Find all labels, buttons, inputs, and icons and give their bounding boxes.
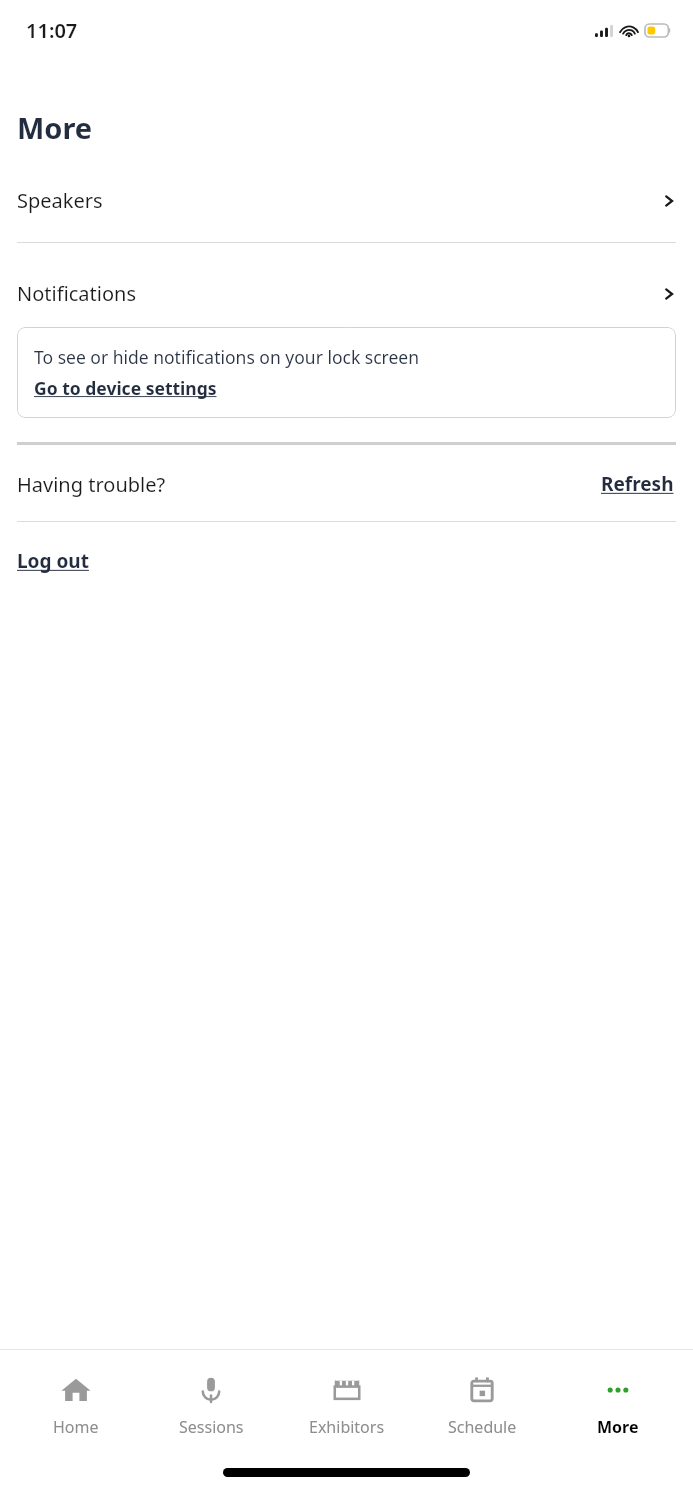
staticText: Go to device settings xyxy=(34,376,217,400)
staticText: Refresh xyxy=(601,471,674,497)
button[interactable]: Speakers xyxy=(0,181,693,220)
staticText: 11:07 xyxy=(26,17,78,44)
staticText: Notifications xyxy=(17,280,136,307)
button[interactable]: More xyxy=(558,1373,678,1438)
button[interactable]: Home xyxy=(16,1373,136,1438)
staticText: More xyxy=(597,1416,639,1438)
button[interactable]: Refresh xyxy=(599,467,676,501)
button[interactable]: Schedule xyxy=(422,1373,542,1438)
staticText: Having trouble? xyxy=(17,471,166,498)
staticText: To see or hide notifications on your loc… xyxy=(34,345,420,369)
button[interactable]: Sessions xyxy=(151,1373,271,1438)
staticText: Schedule xyxy=(448,1416,517,1438)
staticText: Exhibitors xyxy=(309,1416,385,1438)
staticText: Speakers xyxy=(17,187,103,214)
staticText: Sessions xyxy=(179,1416,244,1438)
button[interactable]: Log out xyxy=(17,544,89,578)
staticText: Log out xyxy=(17,548,89,574)
staticText: More xyxy=(17,108,93,147)
button[interactable]: To see or hide notifications on your loc… xyxy=(17,327,676,418)
button[interactable]: Exhibitors xyxy=(287,1373,407,1438)
staticText: Home xyxy=(53,1416,99,1438)
button[interactable]: Notifications xyxy=(0,274,693,313)
